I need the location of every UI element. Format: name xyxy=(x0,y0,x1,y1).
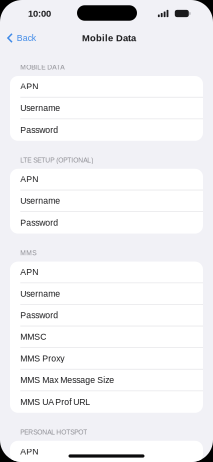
staticText: Username xyxy=(20,196,60,206)
staticText: APN xyxy=(20,174,38,184)
staticText: Username xyxy=(20,289,60,298)
button[interactable]: Username xyxy=(10,283,203,305)
staticText: MOBILE DATA xyxy=(20,64,64,71)
staticText: Mobile Data xyxy=(82,33,136,43)
staticText: Password xyxy=(20,310,58,320)
staticText: MMS xyxy=(20,249,36,257)
staticText: MMS UA Prof URL xyxy=(20,397,90,407)
button[interactable]: Username xyxy=(10,190,203,212)
staticText: 10:00 xyxy=(28,8,51,19)
button[interactable]: Password xyxy=(10,119,203,141)
button[interactable]: Back xyxy=(0,30,40,46)
staticText: APN xyxy=(20,447,38,456)
staticText: APN xyxy=(20,82,38,91)
button[interactable]: APN xyxy=(10,76,203,98)
staticText: PERSONAL HOTSPOT xyxy=(20,428,87,436)
button[interactable]: Password xyxy=(10,305,203,326)
staticText: Password xyxy=(20,125,58,135)
button[interactable]: MMSC xyxy=(10,326,203,348)
button[interactable]: MMS UA Prof URL xyxy=(10,391,203,413)
staticText: LTE SETUP (OPTIONAL) xyxy=(20,156,93,164)
button[interactable]: Password xyxy=(10,212,203,234)
staticText: MMSC xyxy=(20,332,46,342)
staticText: Username xyxy=(20,103,60,113)
button[interactable]: APN xyxy=(10,441,203,462)
button[interactable]: APN xyxy=(10,169,203,190)
button[interactable]: APN xyxy=(10,262,203,283)
staticText: APN xyxy=(20,267,38,277)
button[interactable]: Username xyxy=(10,98,203,119)
button[interactable]: MMS Proxy xyxy=(10,348,203,370)
staticText: MMS Proxy xyxy=(20,354,64,363)
staticText: Back xyxy=(17,33,36,43)
button[interactable]: MMS Max Message Size xyxy=(10,370,203,391)
staticText: MMS Max Message Size xyxy=(20,375,114,385)
staticText: Password xyxy=(20,218,58,228)
